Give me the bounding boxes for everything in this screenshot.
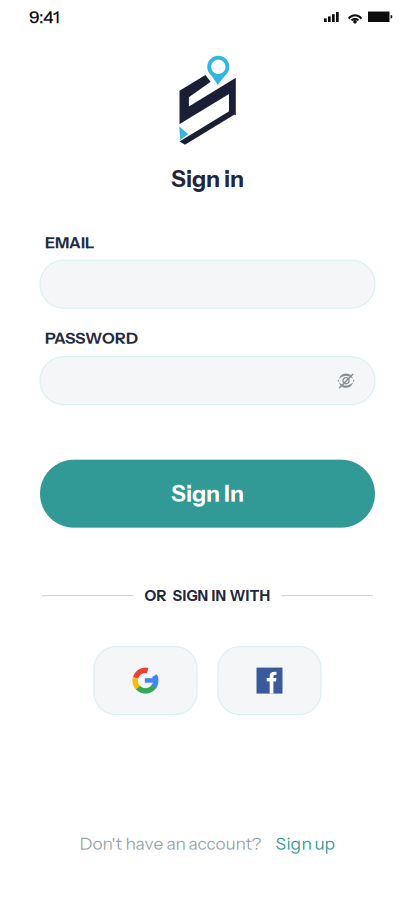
staticText: 9:41 [29,6,60,27]
staticText: Don't have an account? [79,833,261,854]
staticText: PASSWORD [45,328,138,348]
staticText: Sign in [171,165,244,193]
button[interactable]: Sign in with Google [94,647,197,715]
button[interactable]: Sign In [40,460,375,528]
staticText: Sign In [171,480,244,508]
button[interactable]: Sign in with Facebook [218,647,321,715]
staticText: OR SIGN IN WITH [144,587,270,605]
staticText: EMAIL [45,233,94,252]
staticText: Sign up [275,833,335,854]
button[interactable]: Sign up [261,833,335,854]
